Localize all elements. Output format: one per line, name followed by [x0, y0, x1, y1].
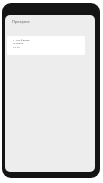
staticText: Прогресс	[12, 19, 31, 24]
staticText: 3 х 50	[13, 46, 20, 49]
staticText: 1. Аль-Фатиха	[13, 39, 29, 42]
button[interactable]: 1. Аль-Фатиха	[7, 36, 85, 55]
button[interactable]: Прогресс	[5, 15, 95, 28]
staticText: Al-Fatiha	[13, 42, 23, 45]
